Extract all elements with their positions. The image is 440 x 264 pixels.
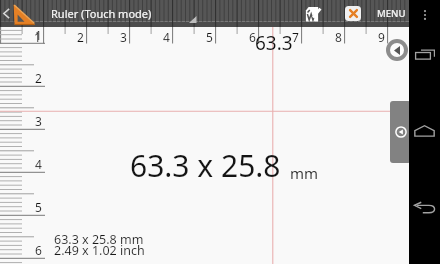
button[interactable]: More options [409, 0, 440, 29]
staticText: 7 [292, 29, 299, 45]
staticText: MENU [377, 7, 406, 20]
staticText: 3 [120, 29, 127, 45]
staticText: 4 [35, 156, 42, 172]
staticText: 4 [163, 29, 170, 45]
staticText: 2.49 x 1.02 inch [54, 242, 145, 259]
staticText: 3 [35, 113, 42, 129]
button[interactable]: Ruler app icon [12, 0, 36, 27]
staticText: 1 [34, 29, 41, 45]
staticText: 5 [35, 199, 42, 215]
button[interactable]: Notes [297, 0, 327, 27]
button[interactable]: Home [409, 111, 440, 151]
staticText: 63.3 [255, 30, 293, 56]
staticText: 2 [35, 70, 42, 86]
staticText: 63.3 x 25.8 [130, 145, 281, 186]
staticText: 63.3 x 25.8 mm [54, 231, 144, 248]
staticText: 8 [335, 29, 342, 45]
staticText: Ruler (Touch mode) [51, 6, 152, 21]
staticText: 6 [249, 29, 256, 45]
staticText: 1 [35, 27, 42, 43]
staticText: 5 [206, 29, 213, 45]
button[interactable]: Back [409, 188, 440, 228]
button[interactable]: Recent apps [409, 34, 440, 74]
staticText: mm [290, 163, 319, 183]
staticText: 2 [77, 29, 84, 45]
button[interactable]: MENU [373, 0, 409, 27]
button[interactable]: Navigate up [0, 0, 13, 27]
staticText: 6 [35, 242, 42, 258]
button[interactable]: Collapse ruler panel [386, 39, 408, 61]
button[interactable]: Clear measurement [338, 0, 368, 27]
button[interactable]: Open side panel [390, 101, 411, 163]
staticText: 9 [378, 29, 385, 45]
